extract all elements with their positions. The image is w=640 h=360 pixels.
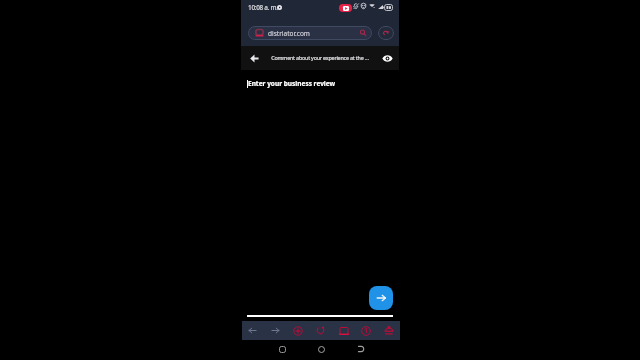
button[interactable]: Account (378, 26, 394, 40)
staticText: Comment about your experience at the … (268, 54, 372, 61)
button[interactable]: distriator.com (248, 26, 372, 40)
button[interactable]: Preview (372, 46, 399, 70)
button[interactable]: Back (243, 321, 262, 340)
staticText: distriator.com (268, 29, 310, 38)
staticText: 1 (364, 326, 369, 336)
button[interactable]: Menu (379, 321, 398, 340)
button[interactable]: Tabs (334, 321, 353, 340)
button[interactable]: Tab switcher (356, 321, 375, 340)
button[interactable]: Forward (266, 321, 285, 340)
staticText: Enter your business review (248, 79, 336, 88)
button[interactable]: Recents (274, 341, 290, 357)
button[interactable]: New tab (288, 321, 307, 340)
button[interactable]: Back (353, 341, 369, 357)
button[interactable]: Submit (369, 286, 393, 310)
staticText: 10:08 a. m. (248, 3, 278, 12)
button[interactable]: Reload (311, 321, 330, 340)
button[interactable]: Back (241, 46, 268, 70)
button[interactable]: Home (313, 341, 329, 357)
